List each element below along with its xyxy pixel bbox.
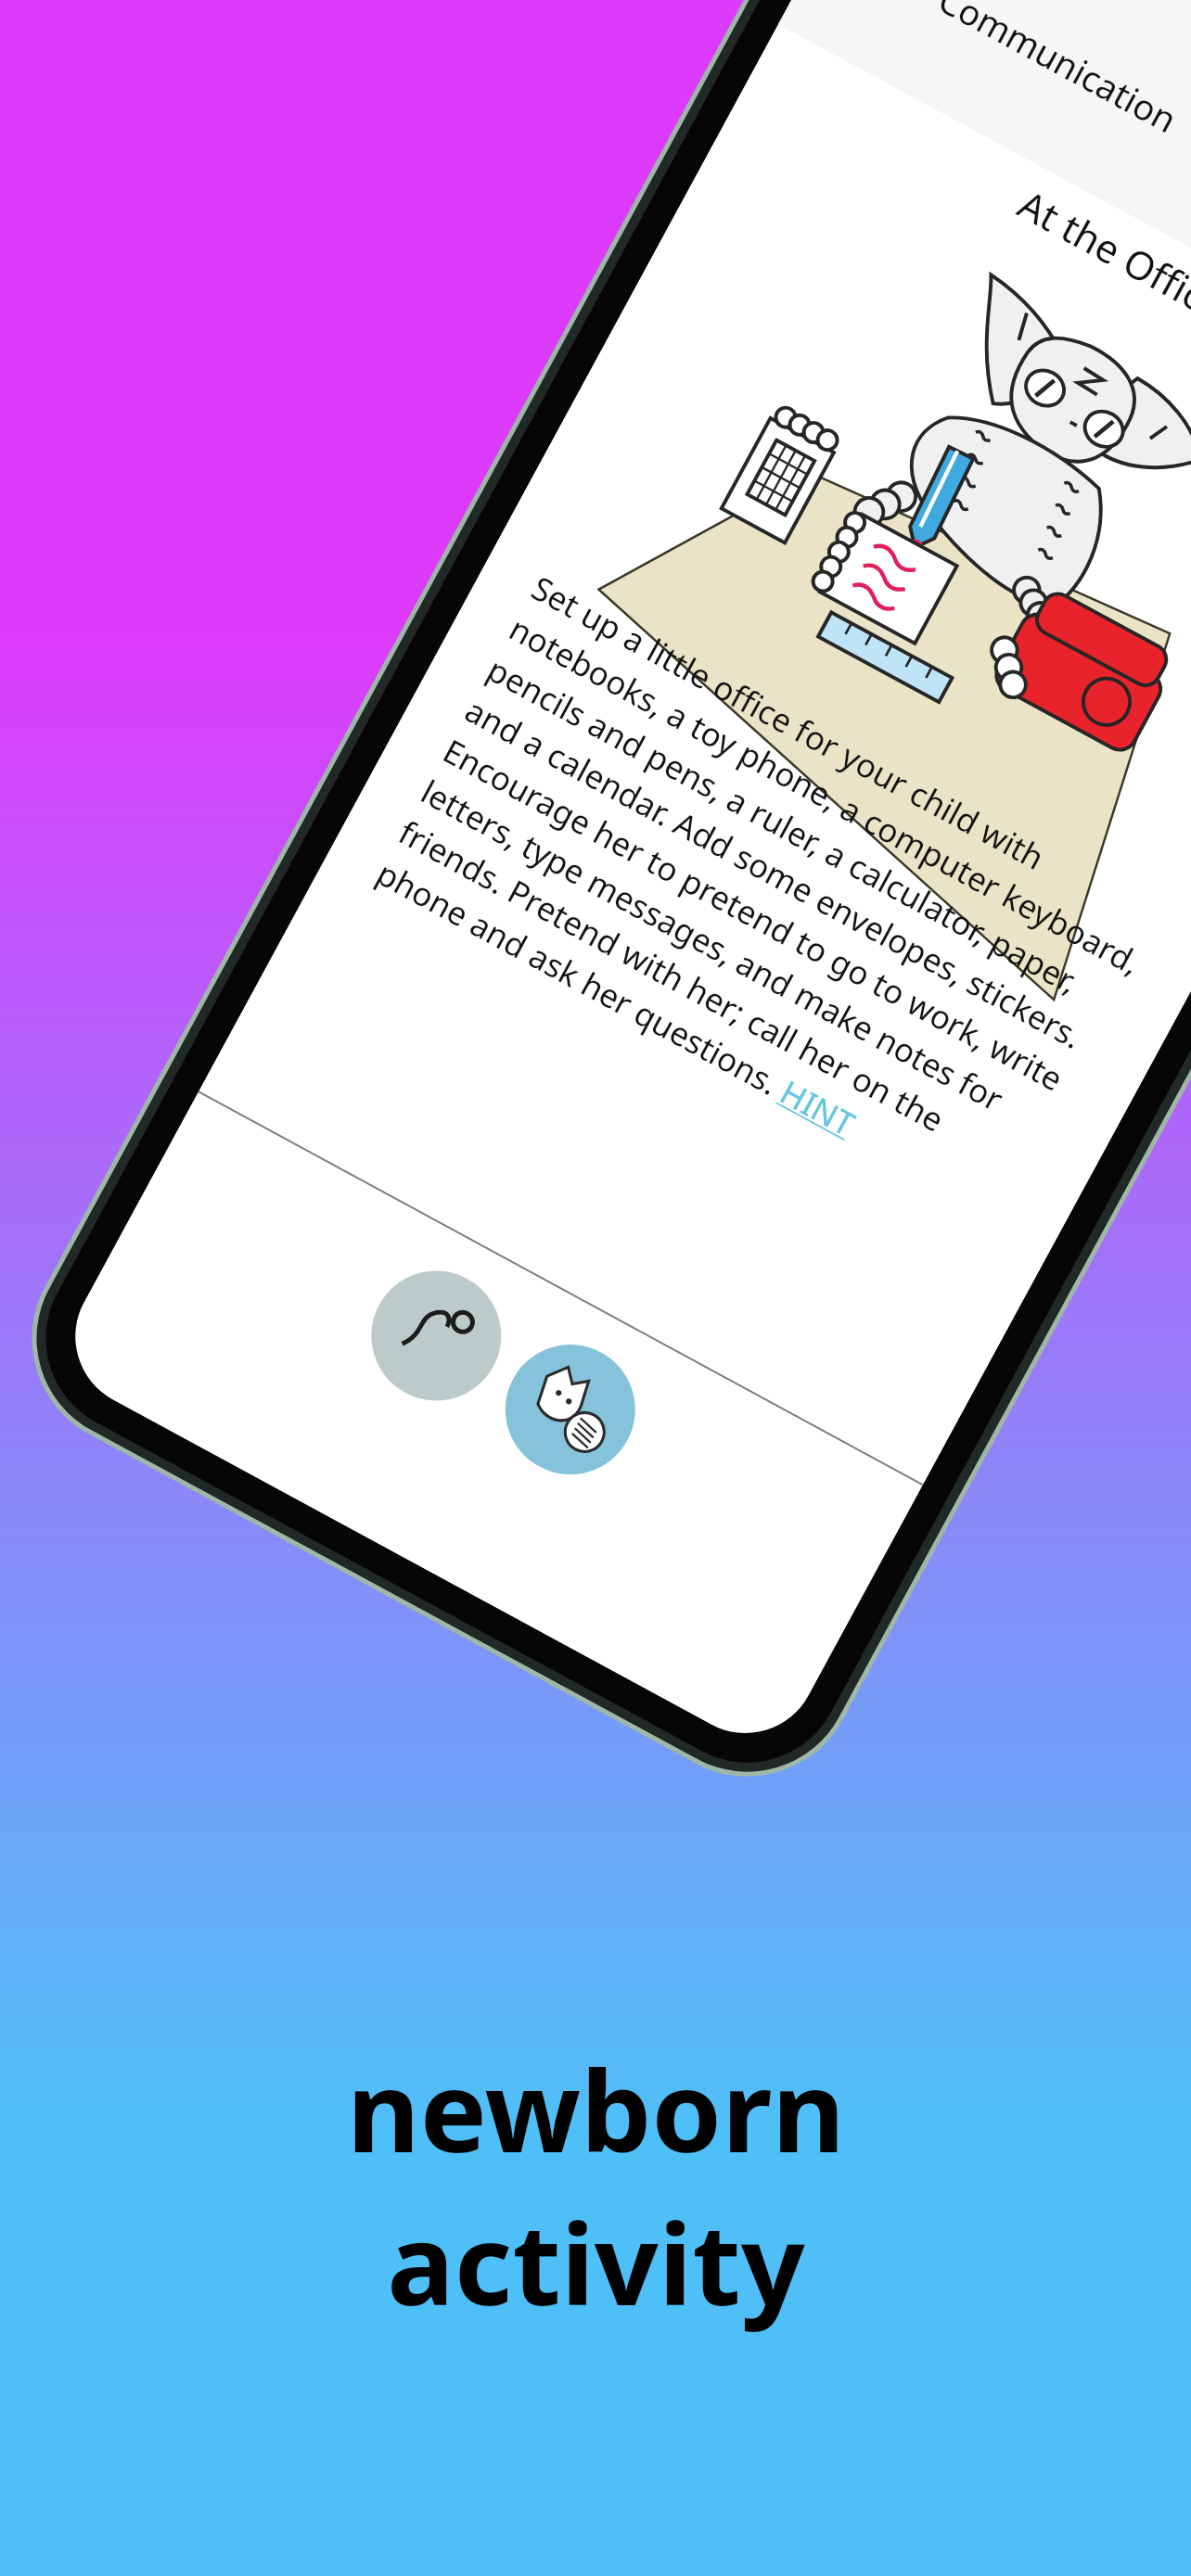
button[interactable]: Communication: [778, 0, 1191, 417]
staticText: Communication: [931, 0, 1186, 143]
staticText: Set up a little office for your child wi…: [370, 566, 1173, 1230]
button[interactable]: Sound activity: [348, 1248, 524, 1424]
button[interactable]: Talking cat: [482, 1322, 658, 1498]
staticText: newborn: [347, 2033, 845, 2186]
staticText: activity: [387, 2186, 805, 2339]
staticText: At the Office: [747, 35, 1191, 474]
